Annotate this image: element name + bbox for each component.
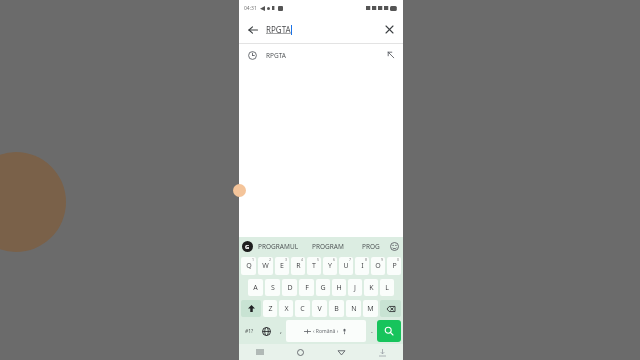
staticText: W: [262, 261, 269, 271]
staticText: RPGTA: [266, 51, 287, 60]
button[interactable]: P: [387, 257, 401, 275]
staticText: ‹ Română ›: [313, 328, 339, 335]
button[interactable]: Insert suggestion: [379, 44, 403, 66]
button[interactable]: #1?: [241, 320, 258, 342]
staticText: J: [354, 283, 356, 293]
button[interactable]: X: [279, 300, 293, 317]
button[interactable]: A: [248, 279, 263, 296]
button[interactable]: H: [332, 279, 346, 296]
staticText: 04:31: [244, 5, 257, 12]
button[interactable]: PROG: [353, 237, 388, 255]
staticText: 2: [269, 257, 272, 262]
button[interactable]: Backspace: [380, 300, 401, 317]
staticText: V: [317, 304, 322, 314]
staticText: X: [284, 304, 289, 314]
staticText: RPGTA: [266, 24, 291, 35]
staticText: ,: [280, 326, 282, 336]
staticText: 7: [349, 257, 352, 262]
staticText: 5: [317, 257, 320, 262]
staticText: 1: [252, 257, 255, 262]
staticText: U: [343, 261, 349, 271]
staticText: #1?: [245, 328, 254, 335]
staticText: .: [371, 326, 373, 336]
button[interactable]: G: [316, 279, 330, 296]
staticText: T: [312, 261, 316, 271]
button[interactable]: Emoji: [388, 240, 400, 252]
staticText: E: [280, 261, 284, 271]
button[interactable]: RPGTA: [266, 24, 376, 35]
button[interactable]: S: [265, 279, 280, 296]
button[interactable]: N: [346, 300, 361, 317]
button[interactable]: O: [371, 257, 385, 275]
staticText: S: [271, 283, 275, 293]
button[interactable]: Shift: [241, 300, 261, 317]
staticText: 9: [381, 257, 384, 262]
staticText: D: [287, 283, 293, 293]
button[interactable]: PROGRAMUL: [253, 237, 303, 255]
staticText: G: [245, 243, 250, 251]
button[interactable]: ,: [275, 320, 286, 342]
staticText: R: [296, 261, 301, 271]
staticText: 8: [365, 257, 368, 262]
staticText: P: [392, 261, 397, 271]
button[interactable]: Z: [263, 300, 277, 317]
button[interactable]: I: [355, 257, 369, 275]
staticText: M: [367, 304, 374, 314]
button[interactable]: C: [295, 300, 310, 317]
staticText: 6: [333, 257, 336, 262]
staticText: K: [369, 283, 374, 293]
button[interactable]: Y: [323, 257, 337, 275]
button[interactable]: L: [380, 279, 394, 296]
button[interactable]: Voice typing settings: [242, 241, 253, 252]
button[interactable]: V: [312, 300, 327, 317]
staticText: I: [361, 261, 364, 271]
staticText: PROGRAMUL: [258, 242, 299, 251]
staticText: 3: [285, 257, 288, 262]
staticText: C: [300, 304, 305, 314]
button[interactable]: Clear: [376, 16, 403, 43]
staticText: Y: [328, 261, 332, 271]
button[interactable]: E: [275, 257, 289, 275]
button[interactable]: J: [348, 279, 362, 296]
button[interactable]: Back: [239, 16, 266, 43]
staticText: F: [305, 283, 309, 293]
button[interactable]: Change language: [258, 320, 275, 342]
staticText: Q: [246, 261, 252, 271]
button[interactable]: R: [291, 257, 305, 275]
staticText: A: [253, 283, 258, 293]
button[interactable]: D: [282, 279, 297, 296]
button[interactable]: ‹ Română ›: [286, 320, 366, 342]
staticText: G: [320, 283, 326, 293]
button[interactable]: M: [363, 300, 378, 317]
button[interactable]: .: [366, 320, 377, 342]
staticText: PROGRAM: [312, 242, 344, 251]
button[interactable]: F: [299, 279, 314, 296]
staticText: 4: [301, 257, 304, 262]
button[interactable]: B: [329, 300, 344, 317]
button[interactable]: PROGRAM: [303, 237, 353, 255]
staticText: N: [351, 304, 357, 314]
staticText: H: [336, 283, 342, 293]
button[interactable]: RPGTA: [239, 44, 403, 66]
button[interactable]: Back: [321, 344, 362, 360]
button[interactable]: Home: [280, 344, 321, 360]
staticText: B: [334, 304, 339, 314]
staticText: PROG: [362, 242, 380, 251]
button[interactable]: Q: [241, 257, 256, 275]
button[interactable]: U: [339, 257, 353, 275]
button[interactable]: K: [364, 279, 378, 296]
staticText: O: [375, 261, 381, 271]
staticText: 0: [397, 257, 400, 262]
button[interactable]: Recent apps: [239, 344, 280, 360]
button[interactable]: T: [307, 257, 321, 275]
button[interactable]: W: [258, 257, 273, 275]
button[interactable]: Search: [377, 320, 401, 342]
staticText: L: [385, 283, 389, 293]
button[interactable]: Download: [362, 344, 403, 360]
staticText: Z: [268, 304, 273, 314]
